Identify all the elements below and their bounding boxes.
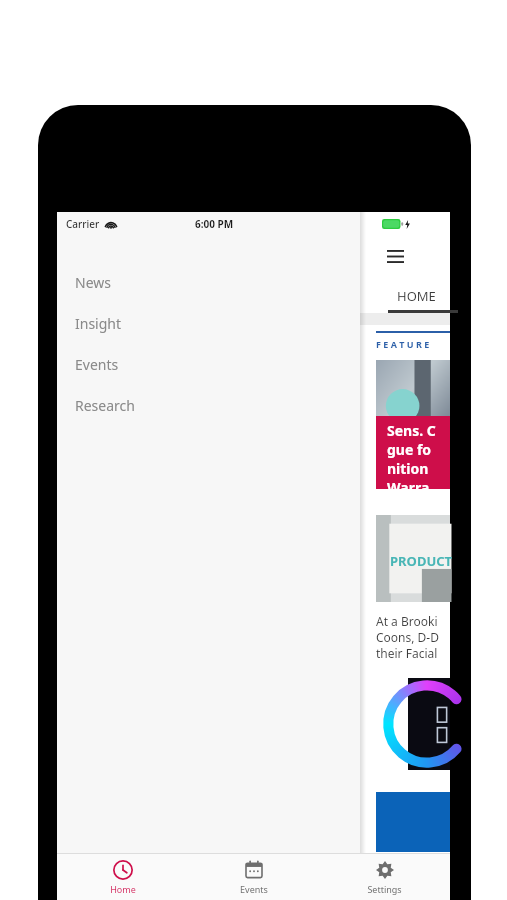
button[interactable]: Sens. C <box>376 360 450 515</box>
staticText: gue fo <box>387 440 432 459</box>
staticText: Coons, D-D <box>376 629 439 645</box>
staticText: Events <box>240 883 268 895</box>
staticText: Sens. C <box>387 421 436 440</box>
staticText: Warra <box>387 478 430 489</box>
staticText: 6:00 PM <box>195 217 234 231</box>
button[interactable]: News <box>57 262 360 303</box>
button[interactable]: Events <box>57 344 360 385</box>
staticText: nition <box>387 459 429 478</box>
button[interactable]: Insight <box>57 303 360 344</box>
staticText: News <box>75 273 111 292</box>
button[interactable]: Research <box>57 385 360 426</box>
button[interactable] <box>408 678 450 770</box>
staticText: their Facial <box>376 645 438 661</box>
staticText: Home <box>110 883 136 895</box>
staticText: Carrier <box>66 217 100 231</box>
staticText: F E A T U R E <box>376 338 430 350</box>
button[interactable]: Events <box>188 854 319 900</box>
staticText: Insight <box>75 314 122 333</box>
staticText: Events <box>75 355 119 374</box>
staticText: Settings <box>367 883 402 895</box>
staticText: At a Brooki <box>376 613 438 629</box>
button[interactable]: HOME <box>360 276 450 313</box>
button[interactable]: Home <box>57 854 188 900</box>
button[interactable]: Settings <box>319 854 450 900</box>
staticText: Research <box>75 396 135 415</box>
staticText: HOME <box>397 287 436 305</box>
button[interactable]: Open navigation menu <box>380 241 410 271</box>
staticText: PRODUCT <box>390 552 453 570</box>
